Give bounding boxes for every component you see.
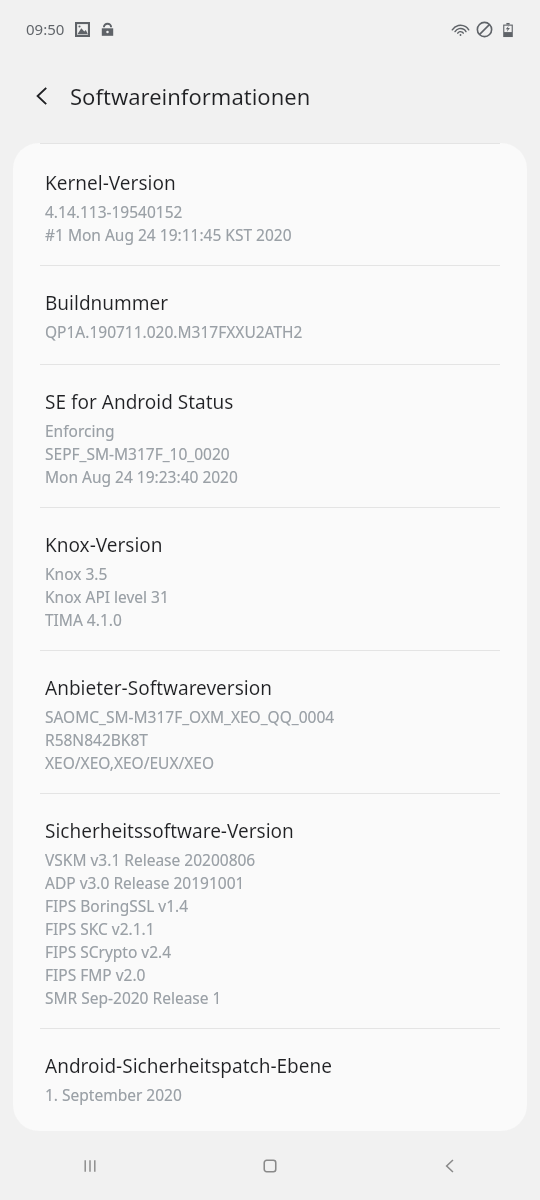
staticText: Kernel-Version — [45, 170, 176, 196]
staticText: FIPS FMP v2.0 — [45, 964, 146, 985]
staticText: 4.14.113-19540152 — [45, 201, 183, 222]
staticText: Sicherheitssoftware-Version — [45, 818, 294, 844]
button[interactable]: Anbieter-Softwareversion — [13, 651, 527, 793]
staticText: TIMA 4.1.0 — [45, 609, 122, 630]
staticText: 09:50 — [26, 19, 65, 39]
staticText: R58N842BK8T — [45, 729, 148, 750]
staticText: Softwareinformationen — [70, 81, 311, 111]
staticText: FIPS BoringSSL v1.4 — [45, 895, 189, 916]
button[interactable]: Letzte Apps — [0, 1131, 180, 1200]
staticText: QP1A.190711.020.M317FXXU2ATH2 — [45, 321, 303, 342]
button[interactable]: Knox-Version — [13, 508, 527, 650]
button[interactable]: Kernel-Version — [13, 144, 527, 265]
staticText: ADP v3.0 Release 20191001 — [45, 872, 245, 893]
button[interactable]: SE for Android Status — [13, 365, 527, 507]
staticText: Mon Aug 24 19:23:40 2020 — [45, 466, 238, 487]
staticText: FIPS SKC v2.1.1 — [45, 918, 155, 939]
staticText: XEO/XEO,XEO/EUX/XEO — [45, 752, 215, 773]
staticText: Buildnummer — [45, 290, 169, 316]
button[interactable]: Zurück — [360, 1131, 540, 1200]
staticText: SE for Android Status — [45, 389, 234, 415]
staticText: SEPF_SM-M317F_10_0020 — [45, 443, 230, 464]
button[interactable]: Android-Sicherheitspatch-Ebene — [13, 1029, 527, 1131]
staticText: Android-Sicherheitspatch-Ebene — [45, 1053, 332, 1079]
button[interactable]: Sicherheitssoftware-Version — [13, 794, 527, 1028]
staticText: Knox 3.5 — [45, 563, 108, 584]
staticText: Knox API level 31 — [45, 586, 169, 607]
staticText: VSKM v3.1 Release 20200806 — [45, 849, 256, 870]
staticText: Knox-Version — [45, 532, 163, 558]
staticText: FIPS SCrypto v2.4 — [45, 941, 172, 962]
staticText: Enforcing — [45, 420, 115, 441]
staticText: SMR Sep-2020 Release 1 — [45, 987, 222, 1008]
staticText: #1 Mon Aug 24 19:11:45 KST 2020 — [45, 224, 292, 245]
button[interactable]: Zurück — [18, 72, 66, 120]
staticText: SAOMC_SM-M317F_OXM_XEO_QQ_0004 — [45, 706, 335, 727]
button[interactable]: Buildnummer — [13, 266, 527, 364]
staticText: 1. September 2020 — [45, 1084, 182, 1105]
staticText: Anbieter-Softwareversion — [45, 675, 272, 701]
button[interactable]: Startbildschirm — [180, 1131, 360, 1200]
